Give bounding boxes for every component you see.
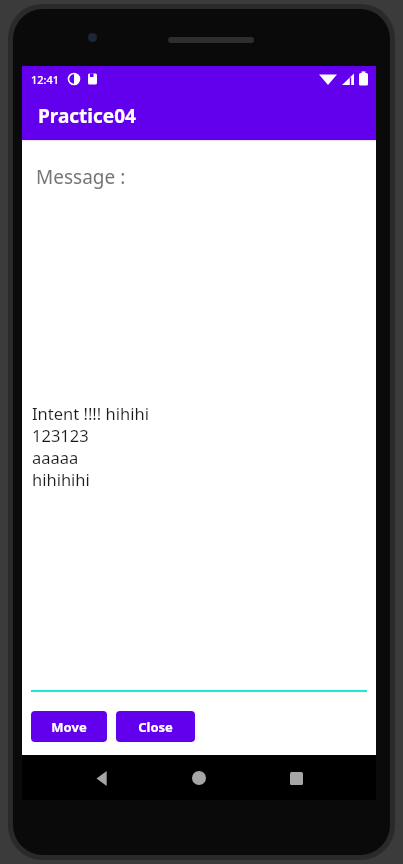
staticText: Move (51, 718, 87, 736)
staticText: 123123 (32, 424, 89, 446)
staticText: Intent !!!! hihihi (32, 402, 149, 424)
button[interactable]: Back (82, 758, 122, 798)
staticText: Close (138, 718, 173, 736)
button[interactable]: Move (31, 711, 107, 742)
button[interactable]: Close (116, 711, 195, 742)
staticText: aaaaa (32, 446, 79, 468)
staticText: Message : (36, 164, 126, 190)
staticText: Practice04 (38, 103, 136, 129)
button[interactable]: Home (179, 758, 219, 798)
button[interactable]: Recent apps (276, 758, 316, 798)
staticText: 12:41 (31, 72, 60, 87)
staticText: hihihihi (32, 468, 90, 490)
